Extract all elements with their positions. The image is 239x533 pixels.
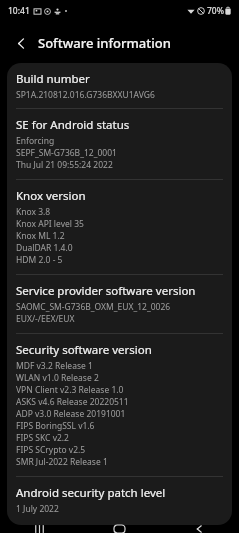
button[interactable]: Knox version (7, 180, 232, 274)
staticText: Enforcing (16, 135, 55, 147)
button[interactable]: Build number (7, 63, 232, 108)
staticText: Knox 3.8 (16, 206, 51, 218)
staticText: SE for Android status (16, 117, 130, 133)
staticText: VPN Client v2.3 Release 1.0 (16, 384, 124, 396)
staticText: 70% (207, 5, 224, 17)
staticText: MDF v3.2 Release 1 (16, 360, 93, 372)
staticText: FIPS SKC v2.2 (16, 432, 69, 444)
staticText: Knox version (16, 188, 86, 204)
staticText: Knox API level 35 (16, 218, 84, 230)
staticText: HDM 2.0 - 5 (16, 254, 63, 266)
staticText: DualDAR 1.4.0 (16, 242, 73, 254)
button[interactable]: Service provider software version (7, 275, 232, 333)
staticText: Software information (38, 34, 171, 52)
staticText: FIPS SCrypto v2.5 (16, 444, 86, 456)
staticText: ADP v3.0 Release 20191001 (16, 408, 126, 420)
button[interactable]: SE for Android status (7, 109, 232, 179)
staticText: ASKS v4.6 Release 20220511 (16, 396, 129, 408)
staticText: Service provider software version (16, 283, 196, 299)
button[interactable]: Home (79, 525, 159, 533)
staticText: 1 July 2022 (16, 503, 59, 515)
staticText: Thu Jul 21 09:55:24 2022 (16, 159, 113, 171)
staticText: 10:41 (8, 5, 30, 17)
staticText: FIPS BoringSSL v1.6 (16, 420, 95, 432)
staticText: Security software version (16, 342, 152, 358)
staticText: WLAN v1.0 Release 2 (16, 372, 99, 384)
button[interactable]: Android security patch level (7, 477, 232, 525)
button[interactable]: Recents (0, 525, 79, 533)
staticText: Knox ML 1.2 (16, 230, 65, 242)
staticText: SAOMC_SM-G736B_OXM_EUX_12_0026 (16, 301, 171, 313)
staticText: Build number (16, 71, 90, 87)
staticText: SP1A.210812.016.G736BXXU1AVG6 (16, 89, 155, 101)
staticText: EUX/-/EEX/EUX (16, 313, 75, 325)
staticText: SEPF_SM-G736B_12_0001 (16, 147, 117, 159)
button[interactable]: Back (10, 32, 32, 54)
staticText: SMR Jul-2022 Release 1 (16, 456, 108, 468)
button[interactable]: Security software version (7, 334, 232, 476)
button[interactable]: Back (159, 525, 239, 533)
staticText: Android security patch level (16, 485, 166, 501)
